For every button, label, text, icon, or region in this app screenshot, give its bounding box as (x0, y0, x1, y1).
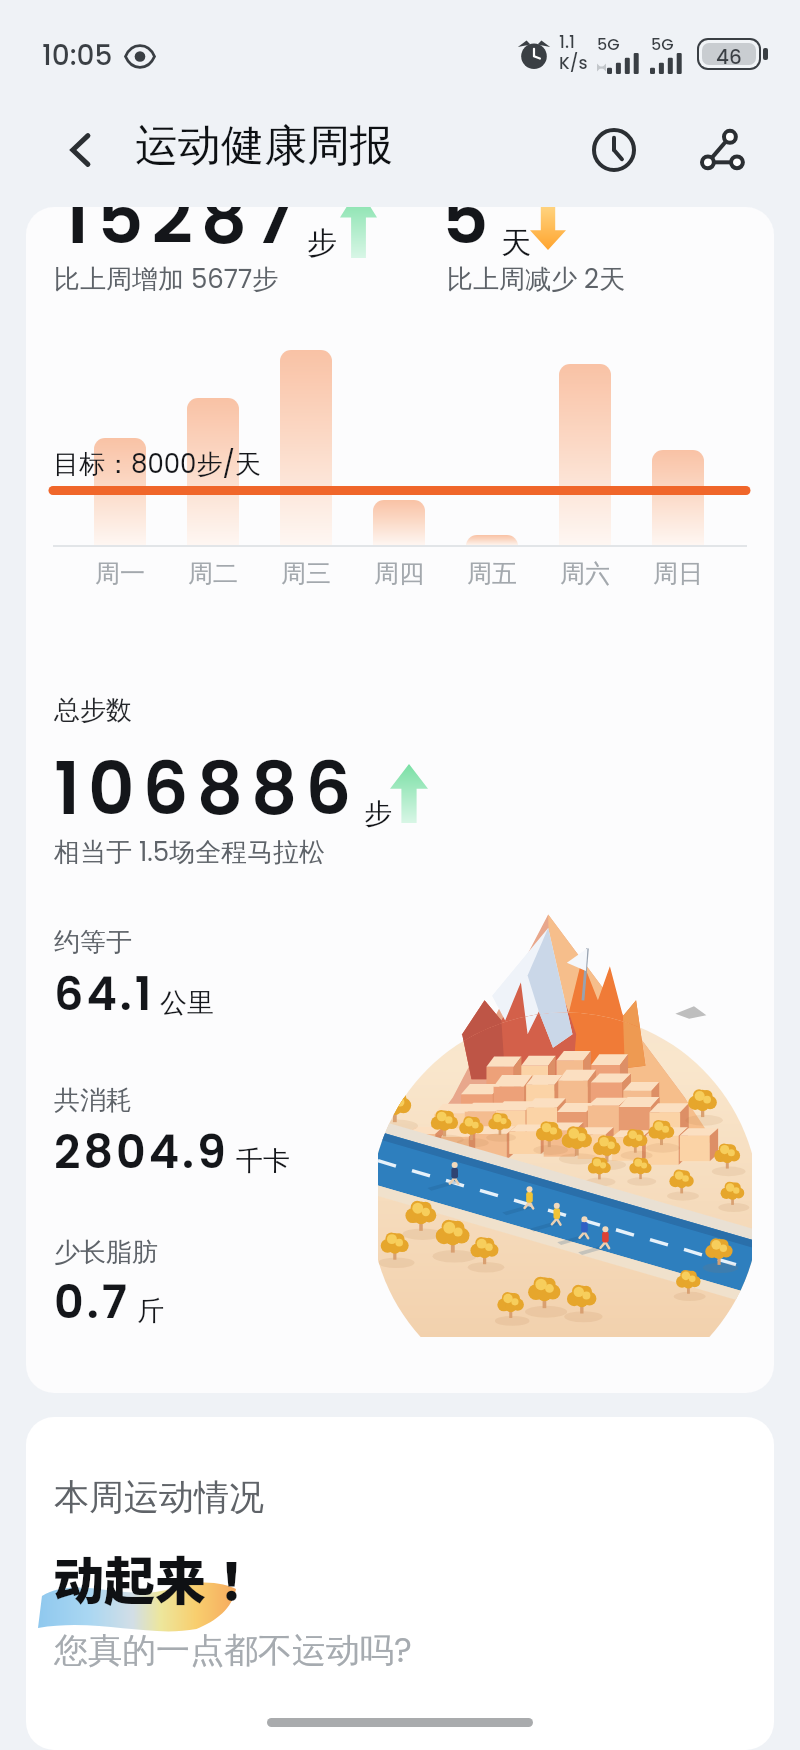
staticText: 相当于 1.5场全程马拉松 (54, 834, 326, 870)
staticText: 15287 (63, 207, 303, 268)
staticText: 千卡 (236, 1144, 290, 1178)
staticText: 周六 (560, 558, 610, 589)
staticText: 运动健康周报 (135, 119, 393, 173)
staticText: 公里 (160, 986, 214, 1020)
staticText: 本周运动情况 (54, 1475, 264, 1519)
staticText: 周日 (653, 558, 703, 589)
staticText: 比上周增加 5677步 (54, 261, 279, 297)
staticText: 步 (307, 224, 337, 262)
staticText: 天 (501, 224, 531, 262)
staticText: K/s (559, 51, 588, 75)
staticText: 斤 (137, 1294, 164, 1328)
staticText: 动起来！ (53, 1541, 258, 1615)
staticText: 周二 (188, 558, 238, 589)
staticText: 少长脂肪 (54, 1236, 158, 1269)
staticText: 周四 (374, 558, 424, 589)
staticText: 步 (364, 796, 392, 831)
staticText: 目标：8000步/天 (53, 446, 261, 482)
staticText: 2804.9 (54, 1120, 229, 1184)
staticText: 您真的一点都不运动吗? (54, 1626, 412, 1674)
staticText: 约等于 (54, 926, 132, 959)
button[interactable]: Back (44, 114, 116, 186)
staticText: 46 (716, 43, 742, 65)
staticText: 0.7 (54, 1270, 130, 1334)
button[interactable]: Share (686, 114, 758, 186)
staticText: 64.1 (54, 962, 155, 1026)
staticText: 比上周减少 2天 (447, 261, 625, 297)
button[interactable]: History (578, 114, 650, 186)
staticText: 总步数 (54, 694, 132, 727)
staticText: 1.1 (559, 30, 575, 54)
staticText: 5 (442, 207, 497, 268)
staticText: 10:05 (42, 36, 113, 75)
staticText: 周一 (95, 558, 145, 589)
staticText: 5G (597, 33, 620, 55)
staticText: 周三 (281, 558, 331, 589)
staticText: 5G (651, 33, 674, 55)
staticText: 周五 (467, 558, 517, 589)
staticText: 共消耗 (54, 1084, 132, 1117)
staticText: 106886 (54, 738, 360, 839)
